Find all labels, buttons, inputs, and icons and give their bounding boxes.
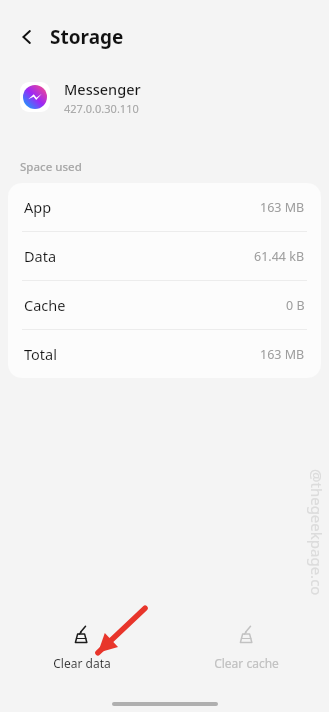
button[interactable]: Clear data bbox=[0, 624, 164, 671]
staticText: 163 MB bbox=[260, 199, 305, 216]
button[interactable]: App bbox=[8, 183, 321, 231]
staticText: Cache bbox=[24, 295, 66, 315]
staticText: 61.44 kB bbox=[254, 248, 305, 265]
staticText: Total bbox=[24, 344, 57, 364]
staticText: Clear data bbox=[53, 655, 111, 671]
button[interactable]: Data bbox=[8, 232, 321, 280]
staticText: 427.0.0.30.110 bbox=[64, 101, 139, 116]
staticText: Clear cache bbox=[214, 655, 279, 671]
staticText: Space used bbox=[20, 159, 82, 175]
staticText: 163 MB bbox=[260, 346, 305, 363]
button[interactable]: Clear cache bbox=[164, 624, 329, 671]
staticText: 0 B bbox=[286, 297, 305, 314]
button[interactable]: Messenger bbox=[0, 76, 329, 118]
button[interactable]: Back bbox=[12, 22, 42, 52]
button[interactable]: Total bbox=[8, 330, 321, 378]
button[interactable]: Cache bbox=[8, 281, 321, 329]
staticText: Data bbox=[24, 246, 57, 266]
staticText: Storage bbox=[50, 24, 124, 50]
staticText: Messenger bbox=[64, 79, 141, 99]
staticText: @thegeekpage.com bbox=[307, 469, 327, 609]
staticText: App bbox=[24, 197, 52, 217]
